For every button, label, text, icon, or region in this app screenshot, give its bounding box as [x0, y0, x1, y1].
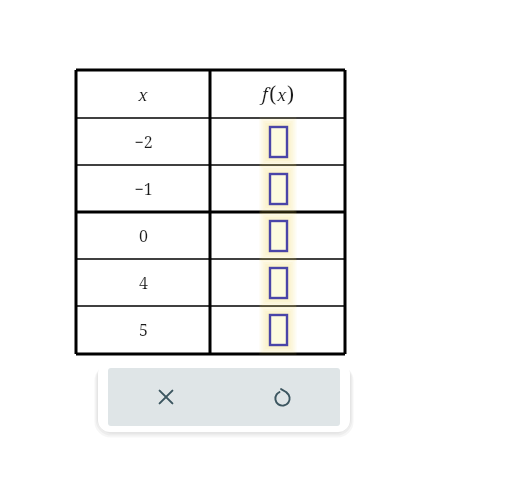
staticText: x — [277, 83, 287, 106]
button[interactable]: Answer input — [263, 121, 293, 163]
staticText: −1 — [134, 178, 153, 200]
button[interactable]: Answer input — [263, 215, 293, 257]
staticText: 4 — [139, 272, 148, 294]
staticText: ( — [269, 80, 277, 109]
button[interactable]: Answer input — [263, 309, 293, 351]
button[interactable]: Answer input — [263, 262, 293, 304]
staticText: ) — [287, 80, 295, 109]
staticText: x — [138, 83, 148, 106]
button[interactable]: Undo — [224, 368, 340, 426]
staticText: f — [262, 82, 268, 107]
button[interactable]: Answer input — [263, 168, 293, 210]
button[interactable]: Clear — [108, 368, 224, 426]
staticText: −2 — [134, 131, 153, 153]
staticText: 5 — [139, 319, 148, 341]
staticText: 0 — [139, 225, 148, 247]
